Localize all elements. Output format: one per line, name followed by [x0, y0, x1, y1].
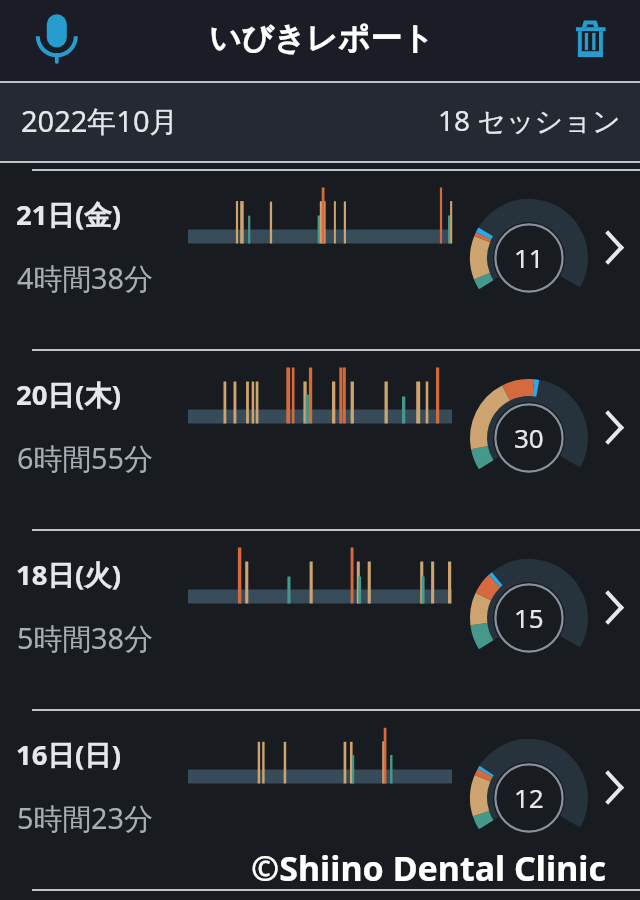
staticText: 18 セッション	[438, 101, 621, 139]
button[interactable]: Record	[25, 8, 89, 72]
staticText: 5時間23分	[17, 798, 153, 837]
button[interactable]: Delete	[569, 16, 613, 60]
staticText: 20日(木)	[16, 376, 122, 414]
staticText: ©Shiino Dental Clinic	[251, 845, 606, 891]
staticText: 6時間55分	[17, 438, 153, 477]
staticText: 11	[514, 240, 544, 275]
button[interactable]: 21日(金)	[0, 171, 640, 349]
staticText: 16日(日)	[16, 736, 122, 774]
staticText: 4時間38分	[17, 258, 153, 297]
staticText: 15	[514, 600, 544, 635]
button[interactable]: 16日(日)	[0, 711, 640, 889]
staticText: 30	[514, 420, 544, 455]
staticText: 21日(金)	[16, 196, 122, 234]
staticText: 2022年10月	[21, 101, 179, 141]
button[interactable]: Open detail	[600, 763, 640, 803]
button[interactable]: Open detail	[600, 403, 640, 443]
button[interactable]: Open detail	[600, 583, 640, 623]
button[interactable]: 18日(火)	[0, 531, 640, 709]
staticText: 12	[514, 780, 544, 815]
staticText: 18日(火)	[16, 556, 122, 594]
staticText: 5時間38分	[17, 618, 153, 657]
staticText: いびきレポート	[209, 19, 434, 59]
button[interactable]: 20日(木)	[0, 351, 640, 529]
button[interactable]: Open detail	[600, 223, 640, 263]
